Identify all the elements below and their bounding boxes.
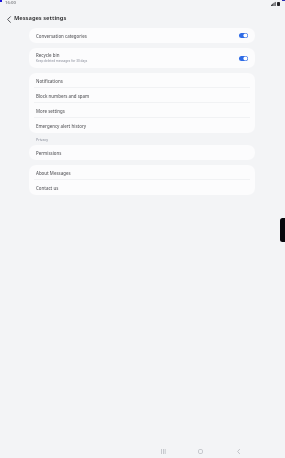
button[interactable]: About Messages <box>29 165 255 180</box>
staticText: 16:00 <box>5 0 16 5</box>
button[interactable]: Toggle on <box>239 33 248 38</box>
button[interactable]: Block numbers and spam <box>29 88 255 103</box>
button[interactable]: Home <box>188 434 212 458</box>
staticText: Permissions <box>36 150 62 156</box>
button[interactable]: More settings <box>29 103 255 118</box>
button[interactable]: Recent apps <box>151 434 175 458</box>
button[interactable]: Emergency alert history <box>29 118 255 133</box>
staticText: Notifications <box>36 78 63 84</box>
button[interactable]: Navigate up <box>1 12 16 27</box>
staticText: More settings <box>36 108 65 114</box>
button[interactable]: Permissions <box>29 145 255 160</box>
button[interactable]: Back <box>226 434 250 458</box>
button[interactable]: Conversation categories <box>29 28 255 43</box>
button[interactable]: Notifications <box>29 73 255 88</box>
staticText: Block numbers and spam <box>36 93 90 99</box>
staticText: Recycle bin <box>36 52 60 58</box>
staticText: Contact us <box>36 185 59 191</box>
button[interactable]: Recycle bin <box>29 48 255 68</box>
staticText: Conversation categories <box>36 33 87 39</box>
staticText: Keep deleted messages for 30 days <box>36 59 88 63</box>
staticText: Messages settings <box>14 14 67 22</box>
button[interactable]: Contact us <box>29 180 255 195</box>
staticText: About Messages <box>36 170 71 176</box>
staticText: Privacy <box>36 137 48 142</box>
staticText: Emergency alert history <box>36 123 87 129</box>
button[interactable]: Toggle on <box>239 56 248 61</box>
